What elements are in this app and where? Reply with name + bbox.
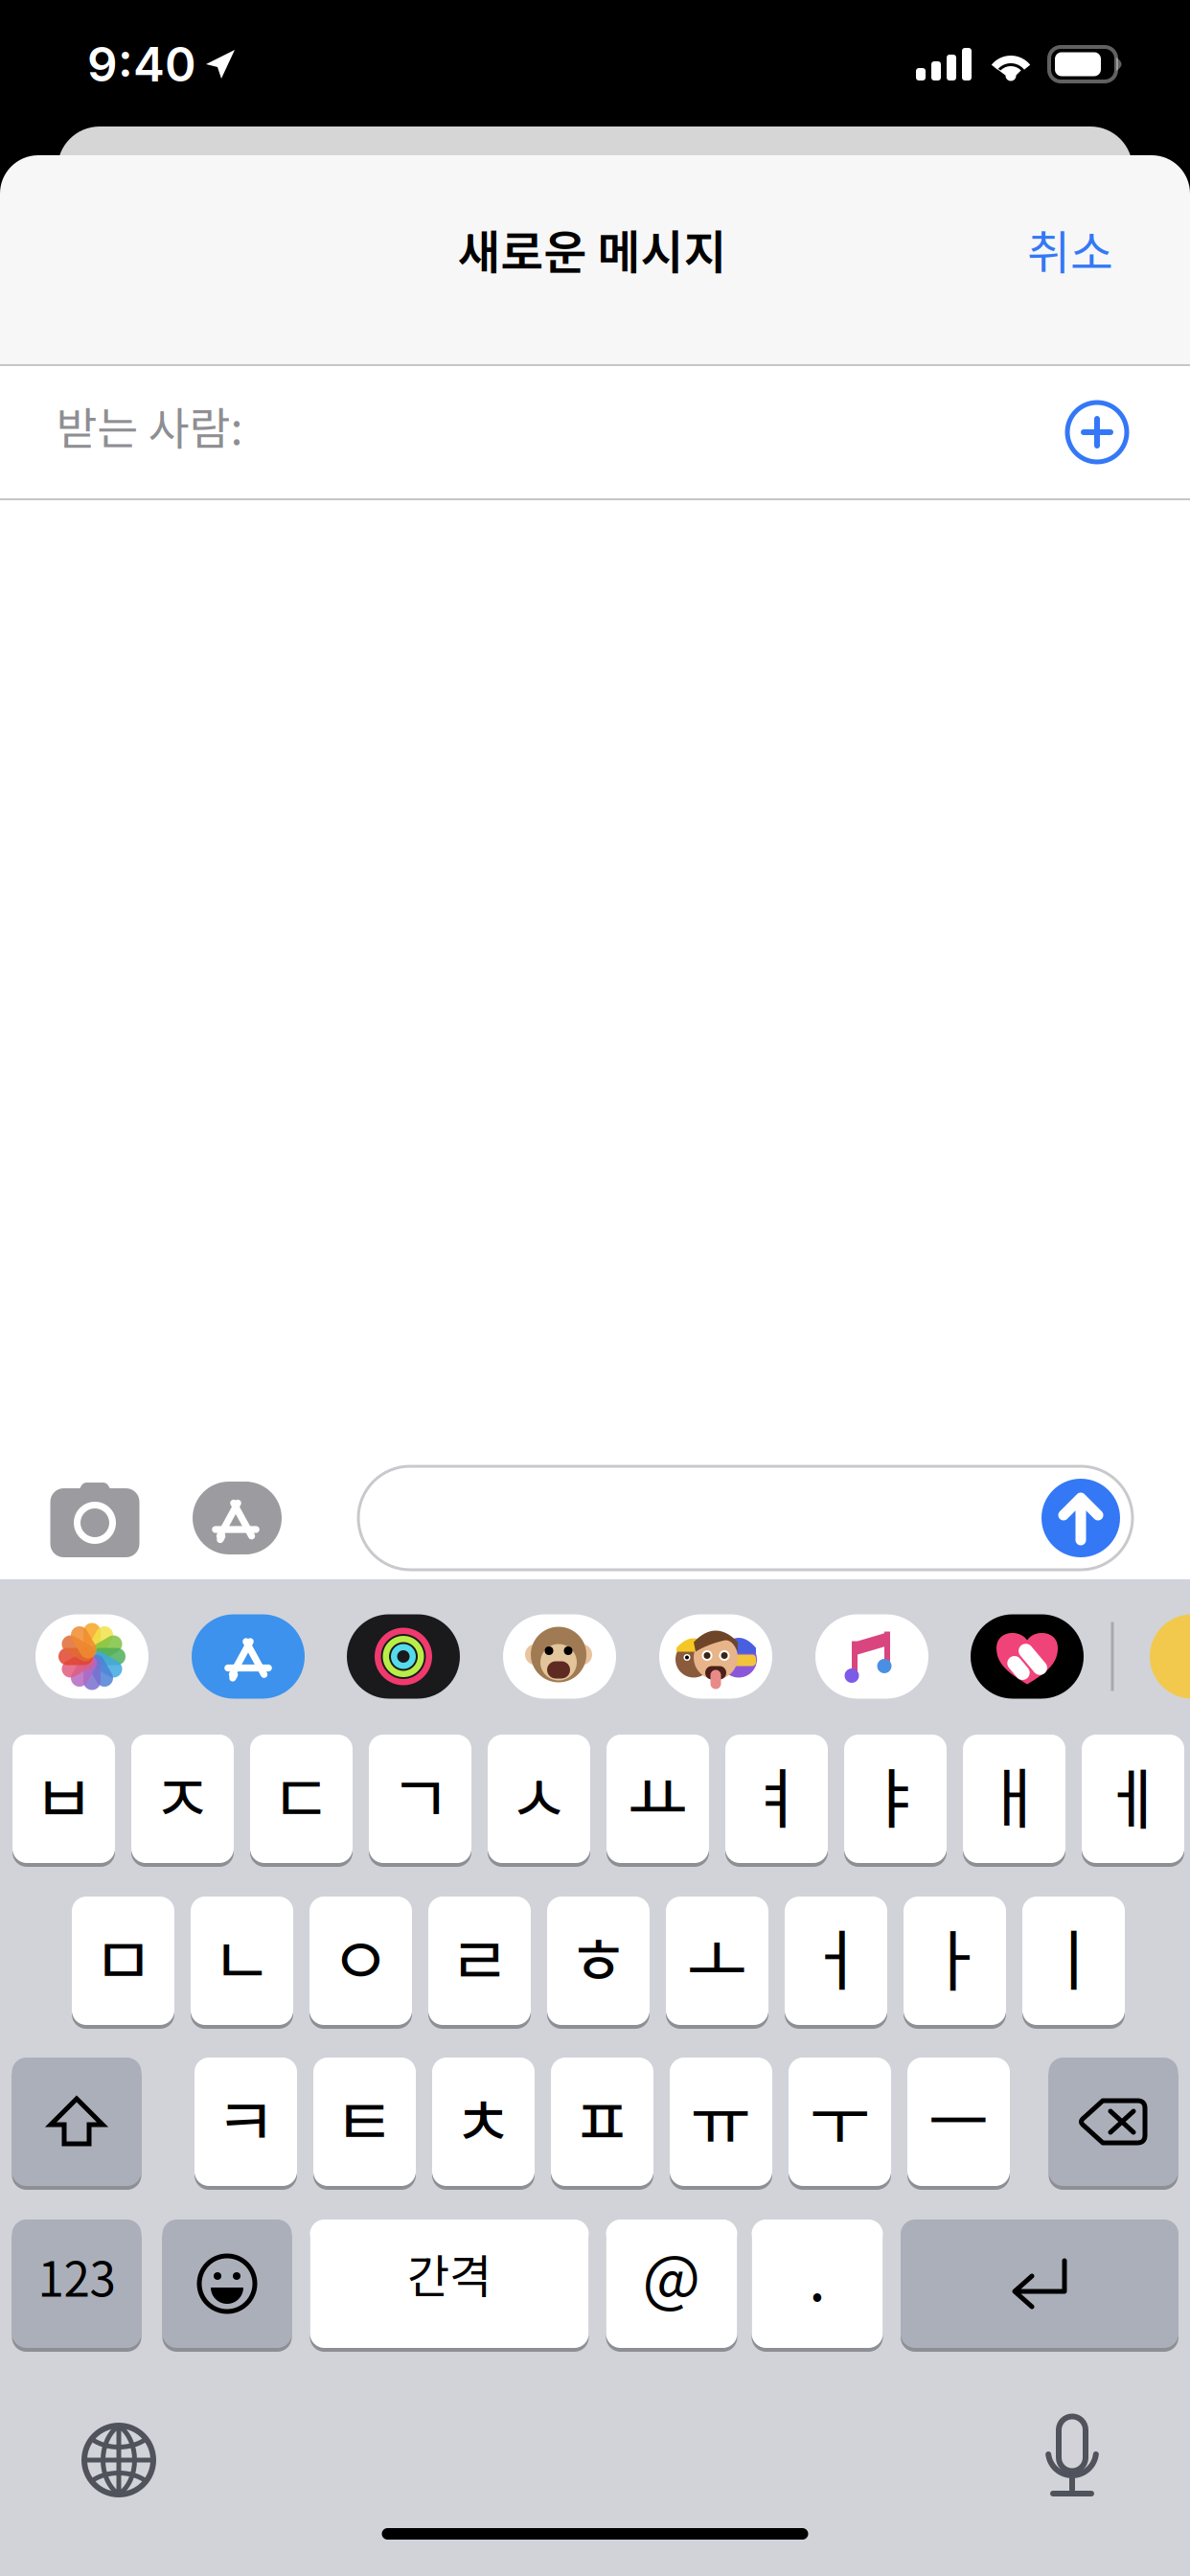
button[interactable]: ㅜ [789, 2058, 891, 2190]
button[interactable]: ㅏ [904, 1897, 1006, 2029]
staticText: ㅁ [92, 1908, 154, 2004]
staticText: ㅓ [805, 1908, 867, 2004]
button[interactable]: Fitness [347, 1614, 460, 1699]
button[interactable]: Photos [35, 1614, 149, 1699]
staticText: @ [642, 2230, 701, 2319]
staticText: 취소 [1027, 215, 1113, 283]
staticText: 123 [38, 2242, 115, 2310]
button[interactable]: ㅐ [963, 1735, 1065, 1867]
staticText: ㅇ [330, 1908, 391, 2004]
button[interactable]: ㅌ [313, 2058, 416, 2190]
button[interactable]: ㄱ [369, 1735, 471, 1867]
button[interactable]: . [752, 2219, 883, 2352]
button[interactable]: ㅊ [432, 2058, 535, 2190]
button[interactable]: Camera [50, 1481, 139, 1557]
staticText: ㅈ [152, 1746, 213, 1842]
button[interactable]: ㄴ [191, 1897, 293, 2029]
button[interactable]: ㅣ [1022, 1897, 1125, 2029]
button[interactable]: ㅁ [72, 1897, 174, 2029]
staticText: ㅑ [865, 1746, 926, 1842]
button[interactable]: Memoji Stickers [659, 1614, 772, 1699]
button[interactable]: ㅍ [551, 2058, 653, 2190]
button[interactable]: ㅡ [907, 2058, 1010, 2190]
staticText: ㅗ [687, 1908, 748, 2004]
button[interactable]: ㅋ [195, 2058, 297, 2190]
button[interactable]: Shift [12, 2058, 141, 2190]
button[interactable]: 123 [12, 2219, 141, 2352]
staticText: ㅛ [627, 1746, 688, 1842]
button[interactable]: Return [901, 2219, 1179, 2352]
button[interactable]: ㅅ [488, 1735, 590, 1867]
staticText: ㄴ [211, 1908, 273, 2004]
staticText: ㅐ [984, 1746, 1045, 1842]
button[interactable]: Emoji [162, 2219, 292, 2352]
button[interactable]: ㅂ [12, 1735, 115, 1867]
button[interactable]: ㅇ [309, 1897, 412, 2029]
button[interactable]: @ [606, 2219, 737, 2352]
staticText: ㅋ [215, 2069, 276, 2165]
button[interactable]: ㅎ [547, 1897, 650, 2029]
staticText: ㅌ [334, 2069, 395, 2165]
button[interactable]: Dictation [1044, 2415, 1100, 2497]
staticText: ㅠ [690, 2069, 752, 2165]
staticText: 받는 사람: [56, 393, 243, 458]
staticText: ㄱ [389, 1746, 451, 1842]
staticText: ㅅ [508, 1746, 570, 1842]
button[interactable]: Memoji [503, 1614, 616, 1699]
button[interactable]: ㅛ [606, 1735, 709, 1867]
button[interactable]: ㅑ [844, 1735, 947, 1867]
staticText: ㅕ [746, 1746, 807, 1842]
button[interactable]: ㅈ [131, 1735, 234, 1867]
button[interactable]: Music [815, 1614, 928, 1699]
staticText: 새로운 메시지 [458, 215, 727, 283]
staticText: ㅜ [809, 2069, 870, 2165]
staticText: ㅡ [928, 2069, 989, 2165]
staticText: 9:40 [87, 36, 196, 93]
button[interactable]: Delete [1049, 2058, 1178, 2190]
staticText: ㅂ [33, 1746, 94, 1842]
staticText: ㄷ [271, 1746, 332, 1842]
button[interactable]: ㅠ [670, 2058, 772, 2190]
button[interactable]: Message [358, 1466, 1133, 1570]
button[interactable]: App Store [192, 1614, 305, 1699]
staticText: ㅔ [1102, 1746, 1164, 1842]
staticText: ㅏ [924, 1908, 985, 2004]
button[interactable]: ㅔ [1082, 1735, 1184, 1867]
button[interactable]: 취소 [984, 182, 1156, 316]
button[interactable]: Health [971, 1614, 1084, 1699]
staticText: ㄹ [449, 1908, 510, 2004]
button[interactable]: ㅗ [666, 1897, 768, 2029]
staticText: ㅊ [453, 2069, 514, 2165]
button[interactable]: Next keyboard [80, 2422, 157, 2498]
staticText: 간격 [407, 2240, 492, 2306]
button[interactable]: ㅓ [785, 1897, 887, 2029]
button[interactable]: Add contact [1040, 375, 1155, 490]
button[interactable]: ㄹ [428, 1897, 531, 2029]
staticText: ㅍ [572, 2069, 633, 2165]
staticText: ㅣ [1043, 1908, 1104, 2004]
button[interactable]: 간격 [310, 2219, 589, 2352]
staticText: . [809, 2230, 826, 2319]
button[interactable]: Send [1041, 1479, 1120, 1557]
button[interactable]: ㅕ [725, 1735, 828, 1867]
staticText: ㅎ [568, 1908, 629, 2004]
button[interactable]: ㄷ [250, 1735, 353, 1867]
button[interactable]: App Store [192, 1480, 287, 1556]
